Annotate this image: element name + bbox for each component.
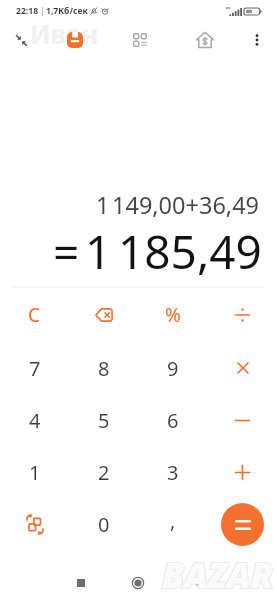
button[interactable]: Unit convert (0, 498, 69, 550)
staticText: 149,00+36,49 (112, 189, 260, 221)
staticText: 185,49 (118, 220, 262, 283)
staticText: = (53, 220, 80, 283)
staticText: Иван (30, 16, 99, 51)
staticText: 2 (98, 459, 110, 486)
button[interactable]: Equals (221, 503, 264, 546)
staticText: 1 (29, 459, 41, 486)
button[interactable]: Plus (208, 446, 277, 498)
button[interactable]: Back (179, 566, 213, 600)
button[interactable]: Unit converter (124, 24, 156, 56)
button[interactable]: 6 (138, 394, 207, 446)
staticText: , (170, 507, 176, 534)
button[interactable]: 9 (138, 342, 207, 394)
button[interactable]: 3 (138, 446, 207, 498)
button[interactable]: Delete (69, 289, 138, 341)
staticText: 22:18 (16, 5, 39, 17)
staticText: C (28, 302, 41, 328)
staticText: 7 (29, 355, 41, 382)
button[interactable]: Memory (58, 23, 92, 57)
button[interactable]: 1 (0, 446, 69, 498)
button[interactable]: 2 (69, 446, 138, 498)
staticText: 1,7Кб/сек (46, 5, 88, 17)
staticText: 4 (29, 407, 41, 434)
button[interactable]: , (138, 498, 207, 550)
staticText: 5 (98, 407, 110, 434)
staticText: 9 (167, 355, 179, 382)
button[interactable]: Minus (208, 394, 277, 446)
staticText: | (40, 5, 45, 17)
staticText: BAZAR (162, 551, 274, 599)
button[interactable]: More options (242, 25, 272, 55)
button[interactable]: 4 (0, 394, 69, 446)
staticText: % (165, 302, 181, 328)
button[interactable]: % (138, 289, 207, 341)
button[interactable]: C (0, 289, 69, 341)
button[interactable]: Recents (64, 566, 98, 600)
button[interactable]: Multiply (208, 342, 277, 394)
button[interactable]: 8 (69, 342, 138, 394)
staticText: 0 (98, 511, 110, 538)
staticText: 3 (167, 459, 179, 486)
staticText: BAZAR (162, 551, 274, 599)
button[interactable]: Home (121, 566, 155, 600)
button[interactable]: Divide (208, 289, 277, 341)
staticText: 6 (167, 407, 179, 434)
staticText: 8 (98, 355, 110, 382)
button[interactable]: Mortgage calculator (189, 24, 221, 56)
staticText: 1 (85, 220, 112, 283)
button[interactable]: 0 (69, 498, 138, 550)
button[interactable]: Collapse (4, 23, 38, 57)
button[interactable]: 5 (69, 394, 138, 446)
staticText: 1 (96, 189, 110, 221)
button[interactable]: 7 (0, 342, 69, 394)
